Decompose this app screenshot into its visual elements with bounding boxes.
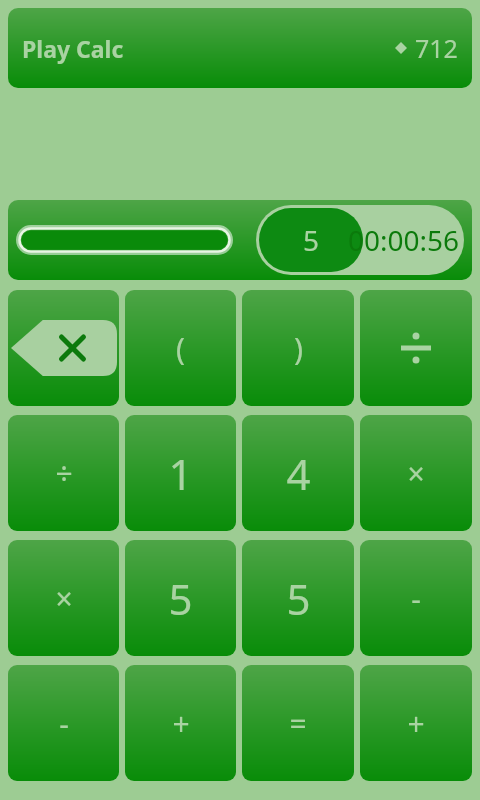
- staticText: =: [289, 703, 307, 744]
- staticText: 5: [168, 570, 193, 627]
- button[interactable]: ): [242, 290, 354, 406]
- staticText: +: [172, 703, 190, 744]
- button[interactable]: -: [8, 665, 119, 781]
- button[interactable]: 5: [125, 540, 236, 656]
- button[interactable]: -: [360, 540, 472, 656]
- button[interactable]: Backspace: [8, 290, 119, 406]
- staticText: (: [176, 328, 185, 369]
- staticText: ×: [55, 578, 73, 619]
- button[interactable]: ×: [360, 415, 472, 531]
- staticText: +: [407, 703, 425, 744]
- button[interactable]: +: [360, 665, 472, 781]
- button[interactable]: +: [125, 665, 236, 781]
- button[interactable]: 5: [242, 540, 354, 656]
- button[interactable]: 4: [242, 415, 354, 531]
- button[interactable]: ×: [8, 540, 119, 656]
- staticText: 1: [168, 445, 193, 502]
- staticText: -: [59, 703, 69, 744]
- staticText: 00:00:56: [348, 221, 460, 259]
- staticText: -: [411, 578, 421, 619]
- button[interactable]: (: [125, 290, 236, 406]
- staticText: 4: [286, 445, 311, 502]
- staticText: ): [294, 328, 303, 369]
- button[interactable]: =: [242, 665, 354, 781]
- button[interactable]: Divide: [360, 290, 472, 406]
- staticText: 5: [303, 221, 320, 259]
- staticText: 712: [415, 31, 458, 65]
- staticText: ÷: [55, 453, 73, 494]
- staticText: ×: [407, 453, 425, 494]
- button[interactable]: Play Calc: [8, 8, 472, 88]
- staticText: 5: [286, 570, 311, 627]
- button[interactable]: ÷: [8, 415, 119, 531]
- button[interactable]: 1: [125, 415, 236, 531]
- staticText: Play Calc: [22, 33, 124, 64]
